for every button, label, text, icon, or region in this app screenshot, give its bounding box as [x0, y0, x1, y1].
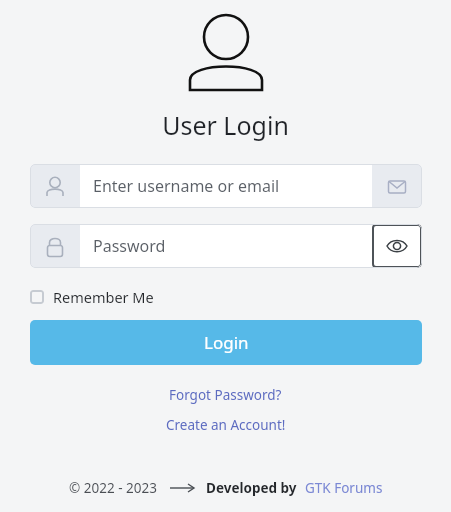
button[interactable]: Create an Account! — [160, 414, 292, 436]
button[interactable]: Password — [30, 224, 422, 268]
staticText: Enter username or email — [93, 175, 280, 197]
staticText: Developed by — [206, 479, 297, 497]
staticText: User Login — [162, 108, 289, 142]
button[interactable]: Remember Me — [30, 285, 154, 309]
button[interactable]: Enter username or email — [30, 164, 422, 208]
button[interactable]: Login — [30, 320, 422, 365]
staticText: Login — [204, 331, 249, 354]
button[interactable]: Show password — [372, 224, 422, 268]
button[interactable]: Email — [372, 164, 422, 208]
staticText: Forgot Password? — [169, 386, 282, 404]
staticText: GTK Forums — [305, 479, 383, 497]
staticText: Remember Me — [53, 287, 154, 307]
button[interactable]: Forgot Password? — [163, 384, 288, 406]
staticText: Password — [93, 235, 166, 257]
staticText: © 2022 - 2023 — [69, 479, 157, 497]
staticText: Create an Account! — [166, 416, 286, 434]
button[interactable]: GTK Forums — [305, 479, 383, 497]
